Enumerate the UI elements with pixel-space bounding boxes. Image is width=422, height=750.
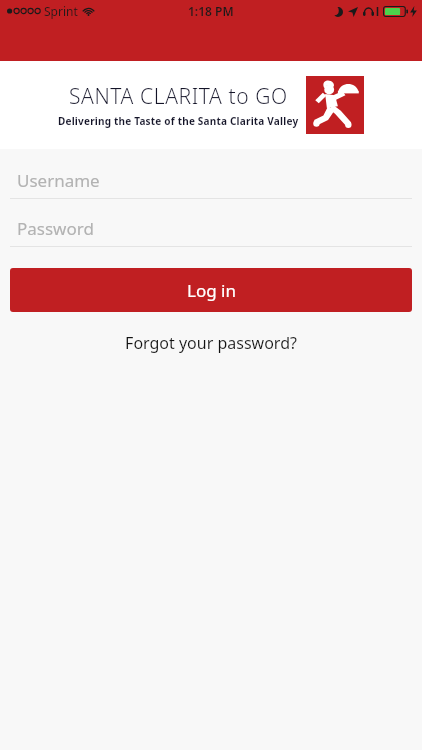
button[interactable]: Log in — [10, 268, 412, 312]
staticText: Username — [17, 169, 100, 192]
staticText: Delivering the Taste of the Santa Clarit… — [58, 114, 299, 128]
staticText: Sprint — [44, 3, 78, 19]
staticText: Password — [17, 217, 94, 240]
other: Santa Clarita to GO logo — [306, 76, 364, 134]
staticText: Log in — [187, 279, 236, 302]
staticText: SANTA CLARITA to GO — [69, 82, 288, 111]
button[interactable]: Password — [0, 213, 422, 247]
staticText: 1:18 PM — [188, 3, 234, 19]
staticText: Forgot your password? — [125, 332, 297, 354]
button[interactable]: Forgot your password? — [0, 326, 422, 360]
button[interactable]: Username — [0, 165, 422, 199]
